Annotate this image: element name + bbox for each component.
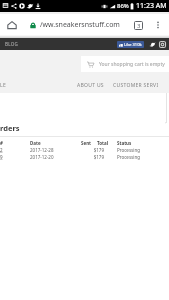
staticText: Status <box>117 140 132 146</box>
staticText: Processing <box>117 147 140 153</box>
button[interactable]: CUSTOMER SERVI <box>113 82 159 89</box>
staticText: 3 <box>137 22 141 30</box>
staticText: Your shopping cart is empty <box>99 61 165 68</box>
staticText: 2017-12-28 <box>30 147 54 153</box>
staticText: 9 <box>0 154 3 160</box>
button[interactable]: More options <box>148 15 168 35</box>
staticText: $179 <box>80 147 104 153</box>
staticText: Like 310k <box>124 42 142 47</box>
button[interactable]: Your shopping cart is empty <box>81 56 169 72</box>
button[interactable]: LE <box>0 82 7 89</box>
button[interactable]: Twitter <box>148 40 156 48</box>
button[interactable]: Home <box>0 13 24 37</box>
staticText: # <box>0 140 3 146</box>
staticText: 2 <box>0 147 3 153</box>
staticText: Total <box>97 140 109 146</box>
button[interactable]: ABOUT US <box>77 82 104 89</box>
staticText: $179 <box>80 154 104 160</box>
button[interactable]: Tabs <box>128 15 148 35</box>
button[interactable]: Instagram <box>158 40 166 48</box>
staticText: Processing <box>117 154 140 160</box>
staticText: 86% <box>117 2 129 10</box>
staticText: 2017-12-20 <box>30 154 54 160</box>
staticText: /ww.sneakersnstuff.com <box>40 20 120 30</box>
staticText: rders <box>0 123 20 133</box>
button[interactable]: Like 310k <box>117 41 144 48</box>
staticText: Sent <box>81 140 92 146</box>
staticText: 11:23 AM <box>136 1 167 11</box>
button[interactable]: BLOG <box>5 41 19 47</box>
staticText: Date <box>30 140 41 146</box>
